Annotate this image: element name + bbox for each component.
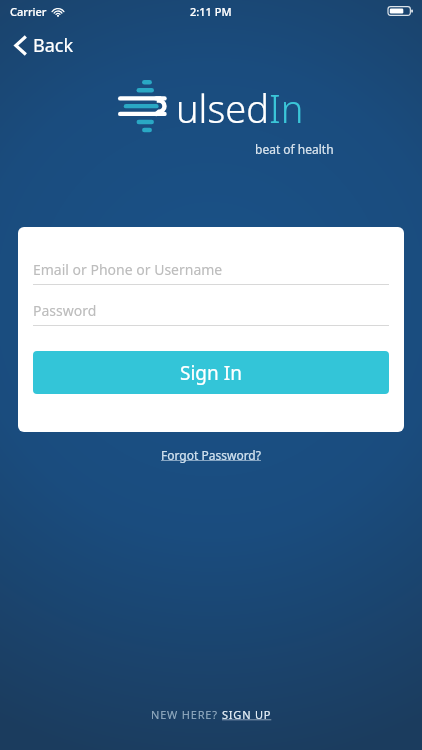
button[interactable]: Back xyxy=(8,28,80,63)
staticText: Carrier xyxy=(10,4,47,19)
button[interactable]: Email or Phone or Username xyxy=(33,260,389,285)
button[interactable]: Sign In xyxy=(33,351,389,394)
staticText: Back xyxy=(33,33,74,58)
staticText: NEW HERE? xyxy=(151,707,222,722)
staticText: beat of health xyxy=(255,141,334,157)
staticText: In xyxy=(269,82,304,134)
staticText: Sign In xyxy=(180,360,242,386)
staticText: 2:11 PM xyxy=(190,4,232,19)
staticText: SIGN UP xyxy=(222,707,272,722)
button[interactable]: NEW HERE? xyxy=(151,707,272,722)
staticText: ulsed xyxy=(176,82,269,134)
staticText: Password xyxy=(33,301,97,320)
staticText: Email or Phone or Username xyxy=(33,260,223,279)
button[interactable]: Forgot Password? xyxy=(0,444,422,466)
button[interactable]: Password xyxy=(33,301,389,326)
